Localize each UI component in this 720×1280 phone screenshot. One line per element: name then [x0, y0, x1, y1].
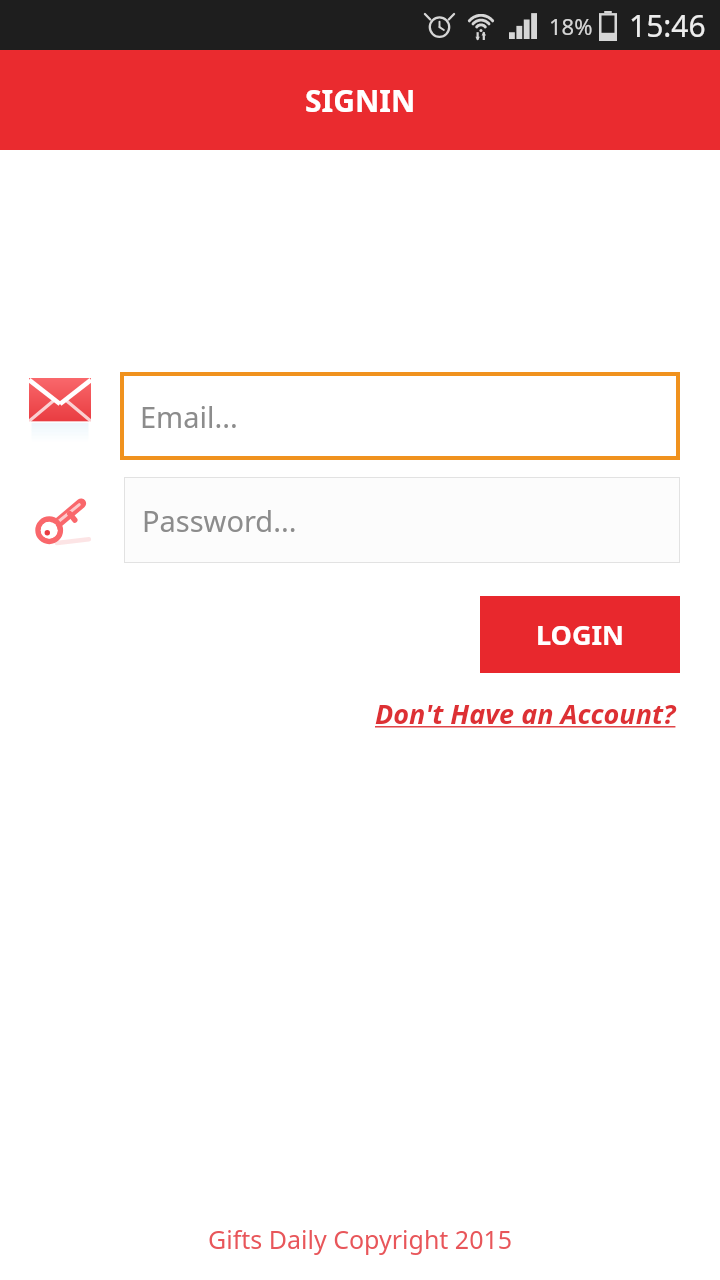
staticText: Password...	[142, 501, 297, 540]
staticText: 18%	[549, 11, 593, 41]
other: Email	[29, 378, 91, 454]
staticText: Email...	[140, 397, 238, 436]
button[interactable]: Password...	[124, 477, 680, 563]
staticText: Gifts Daily Copyright 2015	[208, 1222, 513, 1256]
staticText: Don't Have an Account?	[375, 695, 676, 732]
button[interactable]: Email...	[120, 372, 680, 460]
button[interactable]: LOGIN	[480, 596, 680, 673]
button[interactable]: Don't Have an Account?	[375, 695, 676, 732]
other: Password	[30, 488, 94, 552]
staticText: SIGNIN	[305, 80, 416, 121]
staticText: LOGIN	[536, 616, 624, 653]
staticText: 15:46	[629, 5, 706, 46]
